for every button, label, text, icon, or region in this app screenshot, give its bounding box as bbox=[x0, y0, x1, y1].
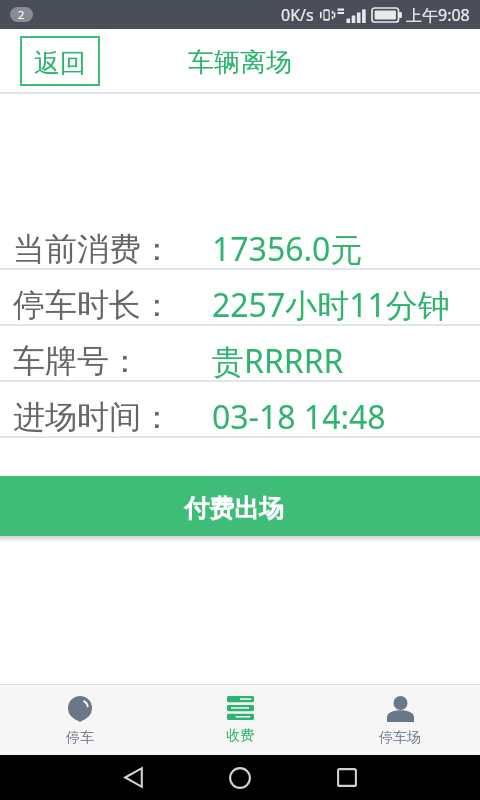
staticText: 付费出场 bbox=[184, 493, 284, 524]
staticText: 停车时长： bbox=[13, 285, 173, 325]
button[interactable]: Recents bbox=[323, 755, 371, 800]
staticText: 贵RRRRR bbox=[212, 339, 344, 383]
staticText: 停车 bbox=[66, 729, 94, 747]
staticText: 2257小时11分钟 bbox=[212, 283, 450, 327]
button[interactable]: 收费 bbox=[160, 685, 320, 745]
button[interactable]: 返回 bbox=[20, 36, 100, 86]
staticText: 停车场 bbox=[379, 729, 421, 747]
staticText: 当前消费： bbox=[13, 229, 173, 269]
staticText: 2 bbox=[18, 7, 25, 22]
button[interactable]: 停车场 bbox=[320, 685, 480, 747]
button[interactable]: 付费出场 bbox=[0, 476, 480, 536]
staticText: 进场时间： bbox=[13, 397, 173, 437]
staticText: 17356.0元 bbox=[212, 227, 363, 271]
staticText: 车牌号： bbox=[13, 341, 141, 381]
button[interactable]: 停车 bbox=[0, 685, 160, 747]
staticText: 车辆离场 bbox=[188, 46, 292, 79]
staticText: 上午9:08 bbox=[406, 4, 470, 26]
staticText: 03-18 14:48 bbox=[212, 395, 386, 439]
button[interactable]: Back bbox=[109, 755, 157, 800]
button[interactable]: Home bbox=[216, 755, 264, 800]
staticText: 收费 bbox=[226, 727, 254, 745]
staticText: 0K/s bbox=[281, 4, 314, 26]
staticText: 返回 bbox=[34, 47, 86, 80]
